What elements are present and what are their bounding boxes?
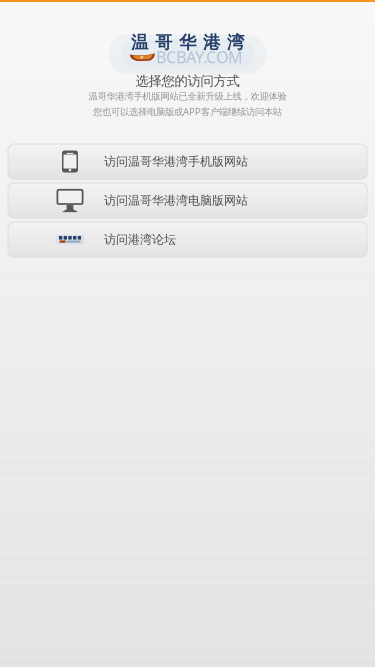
staticText: 访问温哥华港湾电脑版网站 xyxy=(104,193,248,208)
staticText: 华 xyxy=(179,32,196,53)
staticText: 您也可以选择电脑版或APP客户端继续访问本站 xyxy=(93,105,282,118)
staticText: 湾 xyxy=(227,32,244,53)
staticText: BCBAY.COM xyxy=(156,46,243,68)
staticText: 访问温哥华港湾手机版网站 xyxy=(104,154,248,169)
staticText: 温哥华港湾手机版网站已全新升级上线，欢迎体验 xyxy=(88,91,286,102)
button[interactable]: 访问温哥华港湾手机版网站 xyxy=(8,144,367,179)
button[interactable]: 访问温哥华港湾电脑版网站 xyxy=(8,183,367,218)
staticText: 港 xyxy=(203,32,220,53)
button[interactable]: 访问港湾论坛 xyxy=(8,222,367,257)
staticText: 访问港湾论坛 xyxy=(104,232,176,247)
staticText: 哥 xyxy=(155,32,172,53)
staticText: 温 xyxy=(131,32,148,53)
staticText: 选择您的访问方式 xyxy=(135,73,239,89)
